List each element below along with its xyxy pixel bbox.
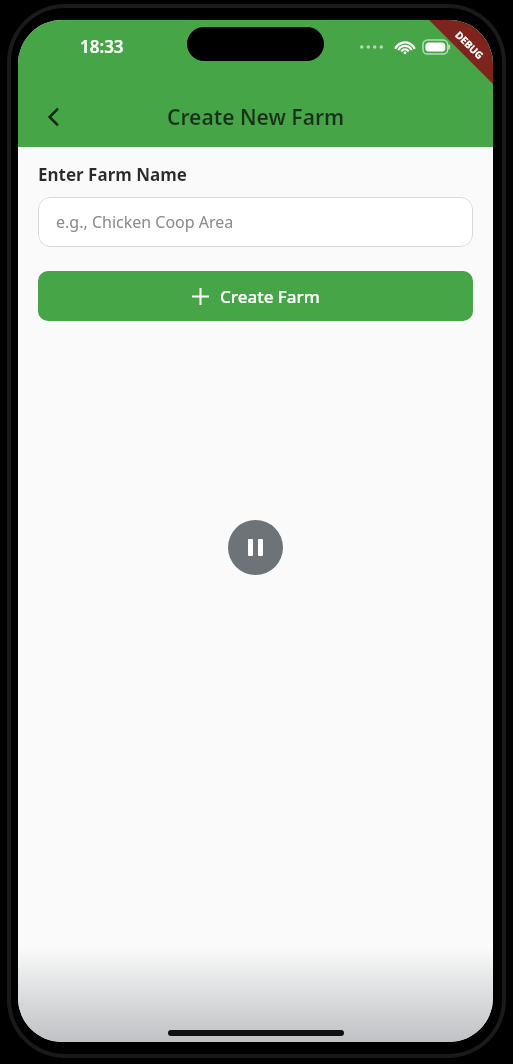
staticText: Enter Farm Name [38, 163, 187, 186]
button[interactable]: Back [30, 93, 78, 141]
button[interactable]: Create Farm [38, 271, 473, 321]
staticText: DEBUG [452, 28, 487, 62]
staticText: Create New Farm [167, 103, 345, 132]
button[interactable]: e.g., Chicken Coop Area [38, 197, 473, 247]
staticText: 18:33 [80, 35, 124, 58]
staticText: e.g., Chicken Coop Area [56, 211, 234, 233]
staticText: Create Farm [220, 285, 320, 308]
button[interactable]: Pause [228, 520, 283, 575]
